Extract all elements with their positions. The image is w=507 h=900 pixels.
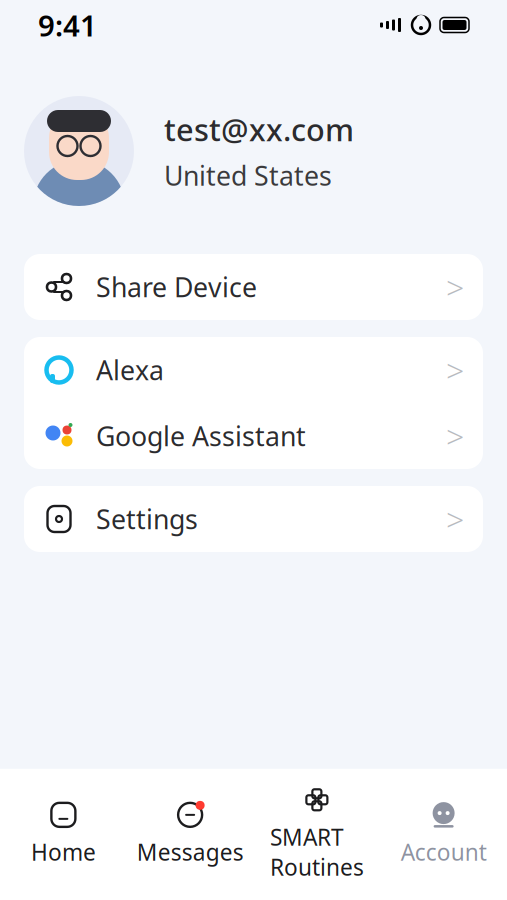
button[interactable]: Share Device [24,254,483,320]
button[interactable]: Messages [127,794,254,873]
button[interactable]: Account [380,794,507,873]
staticText: > [446,498,464,540]
staticText: > [446,266,464,308]
button[interactable]: Google Assistant [24,403,483,469]
staticText: > [446,349,464,391]
staticText: United States [164,158,332,193]
staticText: Messages [137,837,244,867]
button[interactable]: SMART Routines [253,779,380,888]
button[interactable]: Home [0,794,127,873]
staticText: Home [31,837,96,867]
button[interactable]: Settings [24,486,483,552]
button[interactable]: Alexa [24,337,483,403]
staticText: SMART Routines [270,822,364,882]
staticText: Settings [96,501,198,537]
staticText: Account [401,837,487,867]
staticText: test@xx.com [164,109,354,150]
staticText: Google Assistant [96,418,306,454]
staticText: Alexa [96,352,164,388]
staticText: > [446,415,464,457]
staticText: Share Device [96,269,257,305]
staticText: 9:41 [38,5,97,44]
